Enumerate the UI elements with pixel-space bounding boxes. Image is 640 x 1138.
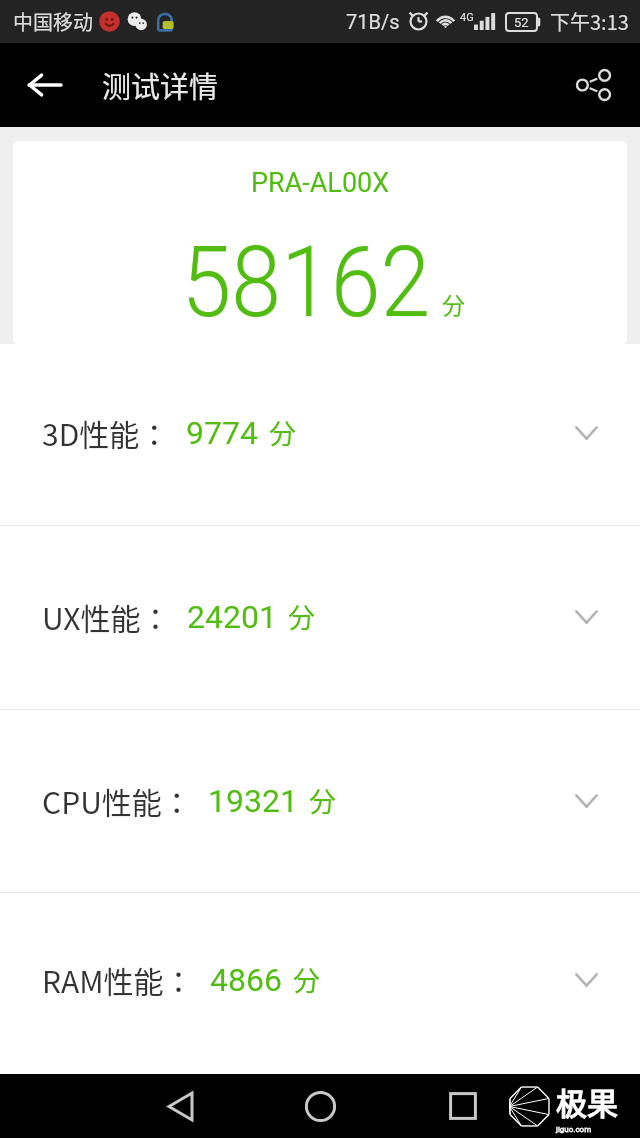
button[interactable]: Share — [567, 59, 619, 111]
staticText: 分 — [269, 413, 296, 452]
staticText: CPU性能： — [42, 779, 192, 822]
staticText: 71B/s — [346, 10, 400, 33]
button[interactable]: Back — [155, 1081, 205, 1131]
staticText: jiguo.com — [556, 1125, 592, 1134]
button[interactable]: Back — [19, 59, 71, 111]
staticText: 分 — [293, 960, 320, 999]
staticText: PRA-AL00X — [251, 167, 390, 199]
button[interactable]: UX性能： — [0, 526, 640, 709]
staticText: 分 — [309, 781, 336, 820]
staticText: RAM性能： — [42, 958, 194, 1001]
staticText: 9774 — [186, 414, 258, 452]
staticText: 极果 — [556, 1079, 618, 1124]
staticText: 分 — [442, 287, 465, 320]
staticText: 52 — [514, 15, 529, 30]
button[interactable]: 3D性能： — [0, 344, 640, 525]
button[interactable]: PRA-AL00X — [13, 141, 627, 344]
staticText: 24201 — [187, 598, 277, 636]
button[interactable]: Home — [295, 1081, 345, 1131]
staticText: 分 — [288, 597, 315, 636]
staticText: 4G — [460, 11, 474, 24]
staticText: 4866 — [210, 961, 282, 999]
staticText: 下午3:13 — [550, 7, 629, 36]
staticText: 58162 — [182, 225, 430, 340]
button[interactable]: Recents — [438, 1081, 488, 1131]
staticText: UX性能： — [42, 595, 171, 638]
staticText: 中国移动 — [13, 7, 93, 36]
button[interactable]: RAM性能： — [0, 893, 640, 1072]
button[interactable]: CPU性能： — [0, 710, 640, 892]
staticText: 3D性能： — [42, 411, 170, 454]
staticText: 19321 — [208, 782, 298, 820]
staticText: 测试详情 — [102, 64, 219, 106]
